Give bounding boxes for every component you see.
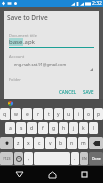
staticText: i: [78, 111, 80, 118]
staticText: Done: [92, 156, 101, 161]
button[interactable]: SAVE: [81, 87, 96, 97]
button[interactable]: Recents: [71, 166, 97, 183]
staticText: l: [93, 125, 95, 132]
button[interactable]: f: [38, 122, 48, 134]
staticText: ?123: [3, 156, 11, 161]
button[interactable]: CANCEL: [57, 87, 79, 97]
staticText: .: [74, 155, 76, 162]
staticText: q: [3, 111, 7, 118]
button[interactable]: p: [94, 108, 103, 120]
button[interactable]: y: [54, 108, 63, 120]
staticText: k: [82, 125, 85, 132]
staticText: ,: [28, 155, 30, 162]
staticText: f: [42, 125, 44, 132]
button[interactable]: g: [49, 122, 58, 134]
staticText: Folder: [9, 77, 21, 82]
staticText: j: [73, 125, 75, 132]
staticText: h: [62, 125, 66, 132]
staticText: m: [81, 140, 86, 147]
staticText: base: [9, 38, 23, 46]
staticText: eng.rsah.sat.91@gmail.com: [14, 62, 67, 67]
button[interactable]: a: [5, 122, 15, 134]
button[interactable]: i: [74, 108, 83, 120]
staticText: w: [14, 111, 18, 118]
button[interactable]: v: [45, 137, 55, 149]
staticText: x: [27, 140, 30, 147]
button[interactable]: r: [33, 108, 43, 120]
staticText: CANCEL: [59, 89, 77, 95]
button[interactable]: d: [27, 122, 37, 134]
staticText: 2:32: [92, 0, 102, 7]
button[interactable]: l: [89, 122, 98, 134]
button[interactable]: h: [59, 122, 68, 134]
staticText: p: [97, 111, 101, 118]
staticText: SAVE: [83, 89, 94, 95]
button[interactable]: e: [22, 108, 32, 120]
staticText: z: [17, 140, 20, 147]
button[interactable]: t: [44, 108, 53, 120]
staticText: .apk: [23, 38, 35, 46]
button[interactable]: j: [69, 122, 78, 134]
button[interactable]: o: [84, 108, 93, 120]
staticText: r: [37, 111, 40, 118]
button[interactable]: m: [78, 137, 88, 149]
staticText: n: [70, 140, 74, 147]
staticText: t: [48, 111, 50, 118]
staticText: a: [9, 125, 12, 132]
button[interactable]: EN: [80, 152, 88, 165]
button[interactable]: c: [34, 137, 44, 149]
button[interactable]: z: [14, 137, 23, 149]
button[interactable]: b: [56, 137, 66, 149]
button[interactable]: Emoji: [14, 152, 23, 165]
button[interactable]: ?123: [0, 152, 13, 165]
button[interactable]: u: [64, 108, 73, 120]
button[interactable]: x: [24, 137, 33, 149]
button[interactable]: Home: [39, 166, 65, 183]
staticText: u: [67, 111, 71, 118]
button[interactable]: q: [0, 108, 10, 120]
button[interactable]: Back: [6, 166, 32, 183]
button[interactable]: w: [11, 108, 21, 120]
button[interactable]: .: [71, 152, 79, 165]
button[interactable]: ,: [24, 152, 33, 165]
staticText: s: [20, 125, 23, 132]
staticText: Account: [9, 54, 25, 59]
staticText: g: [52, 125, 56, 132]
button[interactable]: Shift: [0, 137, 13, 149]
button[interactable]: Done: [89, 152, 103, 165]
staticText: d: [30, 125, 34, 132]
staticText: Document title: [9, 33, 37, 38]
staticText: b: [59, 140, 63, 147]
staticText: EN: [82, 156, 87, 161]
staticText: Save to Drive: [7, 13, 48, 22]
button[interactable]: Space: [34, 152, 70, 165]
staticText: o: [87, 111, 91, 118]
staticText: e: [26, 111, 29, 118]
button[interactable]: k: [79, 122, 88, 134]
button[interactable]: s: [16, 122, 26, 134]
staticText: y: [57, 111, 60, 118]
button[interactable]: Backspace: [89, 137, 103, 149]
staticText: v: [49, 140, 52, 147]
staticText: c: [38, 140, 41, 147]
button[interactable]: n: [67, 137, 77, 149]
